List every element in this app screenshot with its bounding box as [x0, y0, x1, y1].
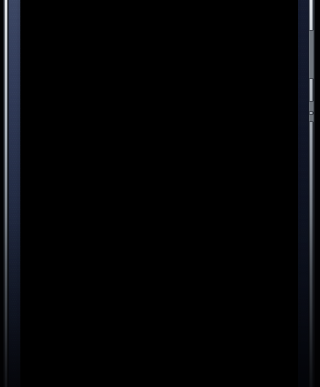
button[interactable]: Device display [0, 0, 320, 387]
